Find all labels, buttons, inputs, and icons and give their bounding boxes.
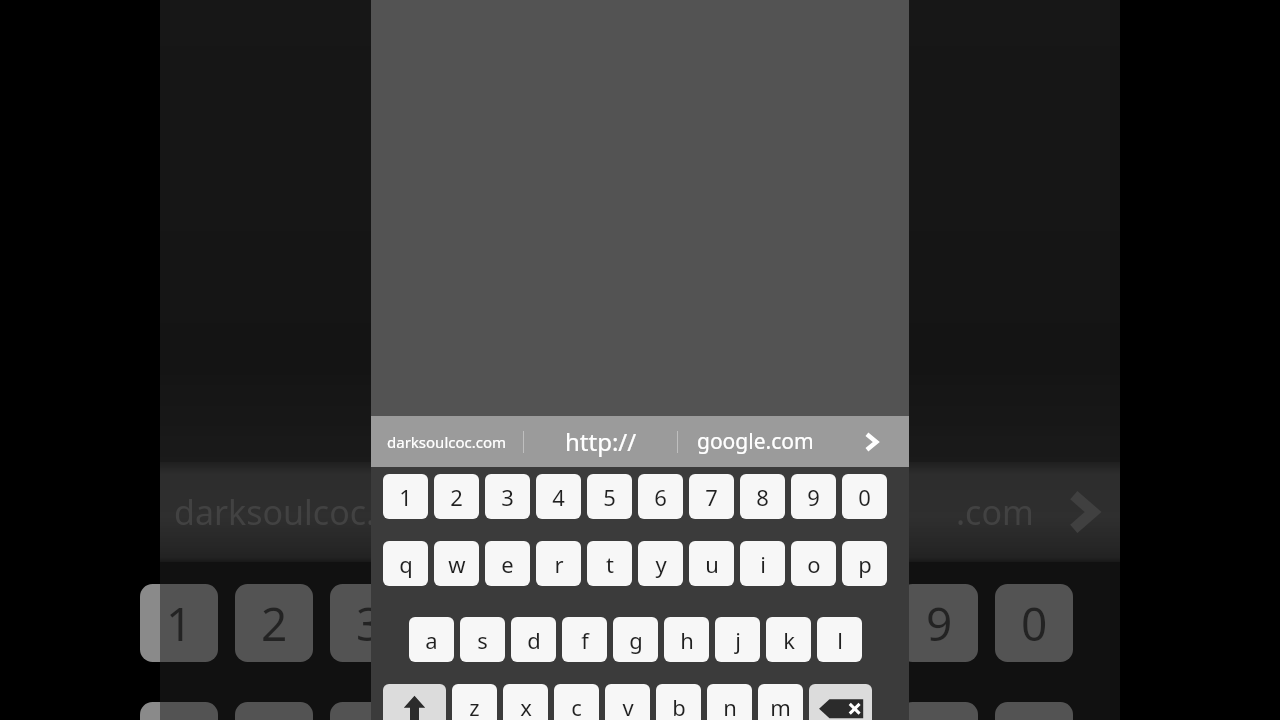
staticText: i bbox=[760, 549, 766, 579]
button[interactable]: Go bbox=[833, 416, 909, 467]
button[interactable]: u bbox=[689, 541, 734, 586]
button[interactable]: i bbox=[740, 541, 785, 586]
button[interactable]: 6 bbox=[638, 474, 683, 519]
staticText: u bbox=[735, 710, 764, 720]
staticText: n bbox=[723, 692, 737, 720]
button[interactable]: darksoulcoc.com bbox=[371, 416, 523, 467]
staticText: b bbox=[672, 692, 686, 720]
button[interactable]: 7 bbox=[689, 474, 734, 519]
staticText: r bbox=[455, 710, 474, 720]
staticText: p bbox=[858, 549, 872, 579]
button[interactable]: p bbox=[842, 541, 887, 586]
staticText: y bbox=[642, 710, 666, 720]
button[interactable]: e bbox=[485, 541, 530, 586]
staticText: t bbox=[606, 549, 614, 579]
staticText: r bbox=[554, 549, 564, 579]
button[interactable]: n bbox=[707, 684, 752, 720]
staticText: .com bbox=[956, 489, 1034, 535]
button[interactable]: l bbox=[817, 617, 862, 662]
staticText: 4 bbox=[451, 592, 478, 655]
button[interactable]: 9 bbox=[791, 474, 836, 519]
staticText: darksoulcoc.com bbox=[387, 432, 507, 452]
staticText: x bbox=[520, 692, 532, 720]
button[interactable]: t bbox=[587, 541, 632, 586]
button[interactable]: y bbox=[638, 541, 683, 586]
staticText: darksoulcoc. bbox=[174, 489, 376, 535]
staticText: e bbox=[356, 710, 382, 720]
staticText: 7 bbox=[736, 592, 763, 655]
staticText: y bbox=[655, 549, 667, 579]
staticText: e bbox=[501, 549, 514, 579]
button[interactable]: h bbox=[664, 617, 709, 662]
staticText: 9 bbox=[807, 482, 820, 512]
staticText: 0 bbox=[858, 482, 871, 512]
button[interactable]: 1 bbox=[383, 474, 428, 519]
button[interactable]: j bbox=[715, 617, 760, 662]
button[interactable]: Shift bbox=[383, 684, 446, 720]
button[interactable]: Backspace bbox=[809, 684, 872, 720]
button[interactable]: d bbox=[511, 617, 556, 662]
staticText: 6 bbox=[641, 592, 668, 655]
staticText: s bbox=[477, 625, 488, 655]
staticText: 8 bbox=[831, 592, 858, 655]
staticText: u bbox=[705, 549, 719, 579]
button[interactable]: z bbox=[452, 684, 497, 720]
staticText: k bbox=[783, 625, 795, 655]
staticText: g bbox=[629, 625, 643, 655]
staticText: 8 bbox=[756, 482, 769, 512]
button[interactable]: 2 bbox=[434, 474, 479, 519]
staticText: t bbox=[551, 710, 568, 720]
staticText: d bbox=[527, 625, 541, 655]
staticText: f bbox=[581, 625, 589, 655]
button[interactable]: google.com bbox=[678, 416, 833, 467]
staticText: 2 bbox=[261, 592, 288, 655]
staticText: m bbox=[770, 692, 791, 720]
button[interactable]: w bbox=[434, 541, 479, 586]
staticText: google.com bbox=[697, 427, 814, 456]
staticText: v bbox=[622, 692, 634, 720]
staticText: 7 bbox=[705, 482, 718, 512]
button[interactable]: 3 bbox=[485, 474, 530, 519]
staticText: http:// bbox=[565, 425, 637, 458]
button[interactable]: v bbox=[605, 684, 650, 720]
button[interactable]: s bbox=[460, 617, 505, 662]
button[interactable]: 0 bbox=[842, 474, 887, 519]
staticText: c bbox=[571, 692, 582, 720]
staticText: 6 bbox=[654, 482, 667, 512]
button[interactable]: g bbox=[613, 617, 658, 662]
staticText: i bbox=[838, 710, 850, 720]
button[interactable]: 4 bbox=[536, 474, 581, 519]
staticText: w bbox=[448, 549, 466, 579]
button[interactable]: a bbox=[409, 617, 454, 662]
staticText: 4 bbox=[552, 482, 565, 512]
staticText: h bbox=[680, 625, 694, 655]
button[interactable]: http:// bbox=[524, 416, 677, 467]
button[interactable]: x bbox=[503, 684, 548, 720]
button[interactable]: k bbox=[766, 617, 811, 662]
button[interactable]: f bbox=[562, 617, 607, 662]
button[interactable]: 5 bbox=[587, 474, 632, 519]
button[interactable]: r bbox=[536, 541, 581, 586]
staticText: a bbox=[425, 625, 438, 655]
staticText: z bbox=[469, 692, 480, 720]
staticText: 9 bbox=[926, 592, 953, 655]
staticText: 1 bbox=[399, 482, 412, 512]
button[interactable]: m bbox=[758, 684, 803, 720]
staticText: 5 bbox=[603, 482, 616, 512]
staticText: 3 bbox=[356, 592, 383, 655]
staticText: 3 bbox=[501, 482, 514, 512]
staticText: l bbox=[837, 625, 843, 655]
button[interactable]: o bbox=[791, 541, 836, 586]
button[interactable]: c bbox=[554, 684, 599, 720]
staticText: q bbox=[399, 549, 413, 579]
button[interactable]: 8 bbox=[740, 474, 785, 519]
button[interactable]: q bbox=[383, 541, 428, 586]
staticText: 5 bbox=[546, 592, 573, 655]
staticText: j bbox=[735, 625, 741, 655]
staticText: o bbox=[807, 549, 821, 579]
button[interactable]: b bbox=[656, 684, 701, 720]
